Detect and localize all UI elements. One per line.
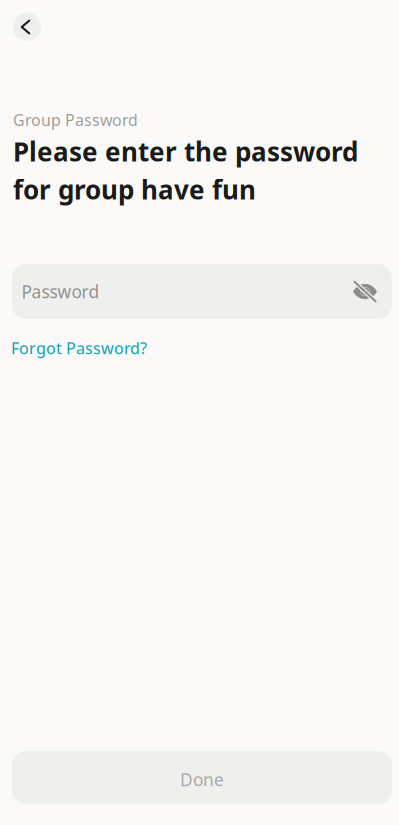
staticText: Please enter the password for group have… xyxy=(13,134,358,207)
staticText: Group Password xyxy=(13,109,138,131)
staticText: Forgot Password? xyxy=(11,337,147,359)
staticText: Done xyxy=(180,768,224,791)
button[interactable]: Forgot Password? xyxy=(0,319,159,363)
button[interactable]: Back xyxy=(13,13,41,41)
staticText: Password xyxy=(21,280,99,303)
button[interactable]: Show password xyxy=(348,274,382,308)
button[interactable]: Done xyxy=(12,751,392,804)
